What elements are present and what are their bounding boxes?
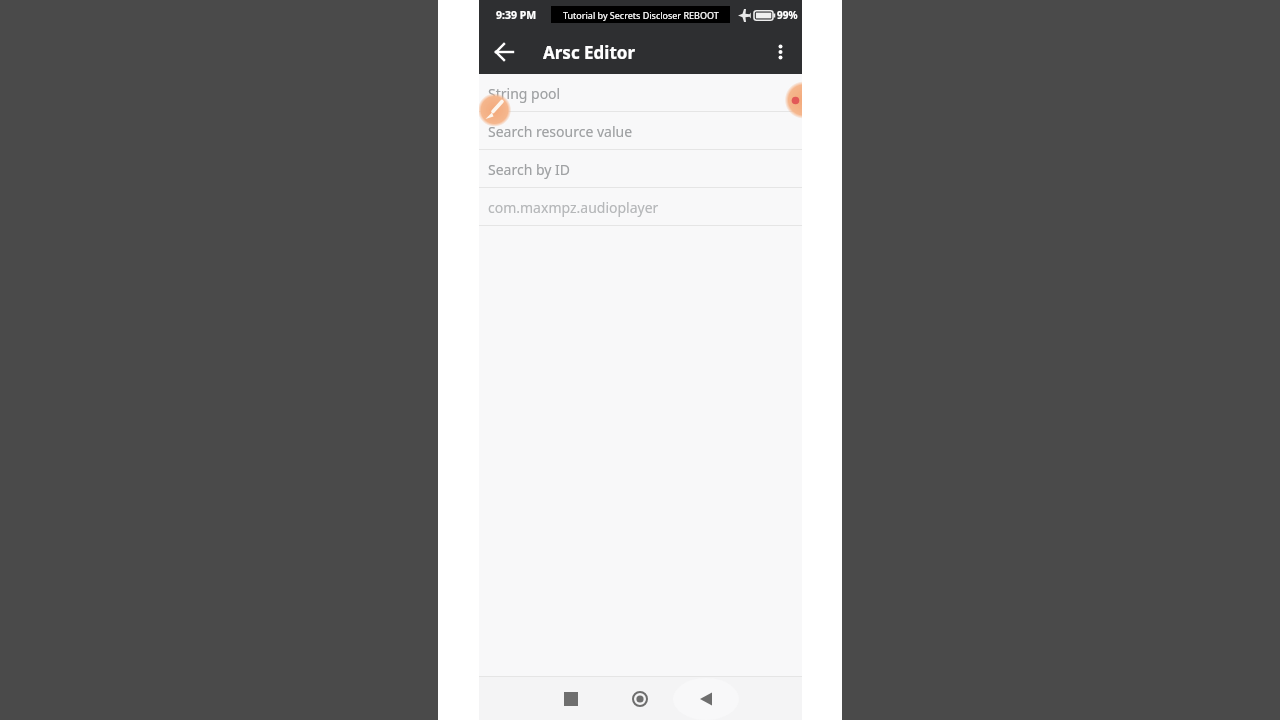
staticText: Search by ID xyxy=(488,160,571,179)
staticText: 99% xyxy=(777,8,798,22)
staticText: Arsc Editor xyxy=(543,41,636,64)
staticText: String pool xyxy=(488,84,561,103)
staticText: com.maxmpz.audioplayer xyxy=(488,198,659,217)
button[interactable] xyxy=(479,93,512,127)
staticText: Tutorial by Secrets Discloser REBOOT xyxy=(563,9,719,21)
button[interactable] xyxy=(550,676,594,720)
staticText: Search resource value xyxy=(488,122,633,141)
button[interactable]: com.maxmpz.audioplayer xyxy=(479,188,802,226)
staticText: 9:39 PM xyxy=(496,8,537,22)
button[interactable]: String pool xyxy=(479,74,802,112)
button[interactable] xyxy=(684,676,728,720)
button[interactable] xyxy=(785,82,802,118)
button[interactable] xyxy=(768,40,794,64)
button[interactable] xyxy=(618,676,662,720)
button[interactable]: Search by ID xyxy=(479,150,802,188)
button[interactable] xyxy=(487,40,523,64)
button[interactable]: Search resource value xyxy=(479,112,802,150)
